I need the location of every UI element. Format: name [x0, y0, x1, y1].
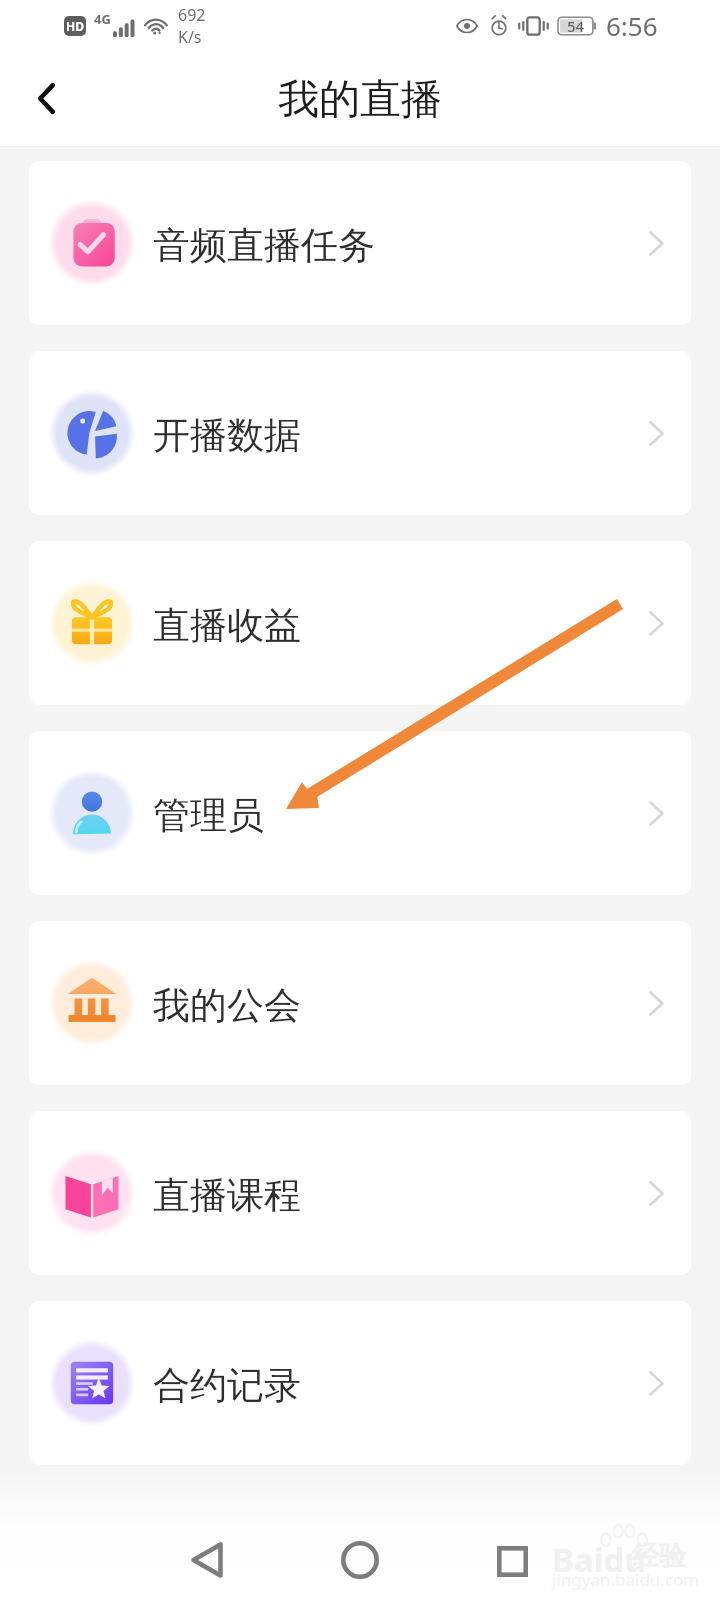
- staticText: 合约记录: [153, 1362, 301, 1409]
- staticText: 我的公会: [153, 982, 301, 1029]
- button[interactable]: 管理员: [29, 731, 691, 895]
- button[interactable]: 我的公会: [29, 921, 691, 1085]
- staticText: 音频直播任务: [153, 222, 375, 269]
- button[interactable]: Recents: [460, 1509, 564, 1600]
- staticText: 54: [567, 16, 585, 36]
- button[interactable]: Back: [155, 1508, 259, 1600]
- staticText: 开播数据: [153, 412, 301, 459]
- button[interactable]: 直播收益: [29, 541, 691, 705]
- staticText: 直播课程: [153, 1172, 301, 1219]
- button[interactable]: 音频直播任务: [29, 161, 691, 325]
- staticText: 6:56: [606, 8, 658, 43]
- button[interactable]: Back: [14, 66, 78, 130]
- button[interactable]: 开播数据: [29, 351, 691, 515]
- button[interactable]: 合约记录: [29, 1301, 691, 1465]
- staticText: jingyan.baidu.com: [552, 1568, 700, 1591]
- staticText: HD: [66, 18, 84, 34]
- staticText: 692: [178, 4, 206, 26]
- button[interactable]: Home: [308, 1508, 412, 1600]
- staticText: 我的直播: [278, 74, 442, 126]
- staticText: 4G: [94, 10, 111, 28]
- staticText: Baidu: [552, 1537, 646, 1582]
- staticText: 直播收益: [153, 602, 301, 649]
- staticText: K/s: [178, 26, 202, 48]
- staticText: 经验: [632, 1539, 686, 1573]
- staticText: 管理员: [153, 792, 264, 839]
- button[interactable]: 直播课程: [29, 1111, 691, 1275]
